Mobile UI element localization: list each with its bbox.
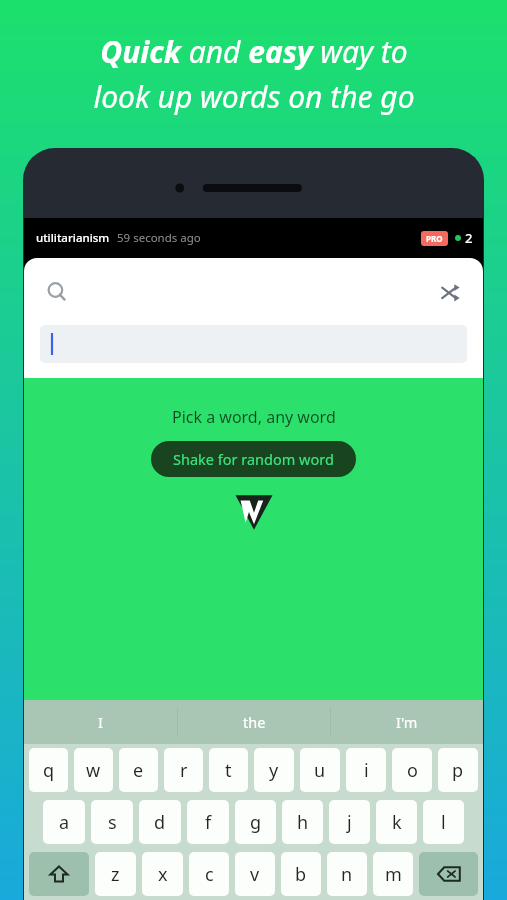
button[interactable]: j	[329, 800, 370, 844]
button[interactable]: r	[164, 748, 203, 792]
button[interactable]: Search	[40, 275, 74, 309]
staticText: the	[243, 712, 266, 732]
button[interactable]: I	[24, 700, 177, 744]
button[interactable]: k	[376, 800, 417, 844]
staticText: m	[385, 862, 402, 887]
staticText: r	[180, 758, 188, 783]
staticText: j	[347, 810, 352, 835]
button[interactable]: e	[119, 748, 158, 792]
staticText: c	[205, 862, 214, 887]
button[interactable]: b	[281, 852, 321, 896]
staticText: a	[59, 810, 70, 835]
staticText: e	[133, 758, 144, 783]
button[interactable]: u	[300, 748, 340, 792]
button[interactable]: o	[392, 748, 432, 792]
button[interactable]: n	[327, 852, 367, 896]
staticText: y	[269, 758, 279, 783]
button[interactable]: q	[29, 748, 68, 792]
button[interactable]: s	[91, 800, 133, 844]
staticText: I	[98, 712, 103, 732]
button[interactable]: Shake for random word	[151, 441, 356, 477]
staticText: f	[205, 810, 212, 835]
button[interactable]: h	[282, 800, 323, 844]
staticText: k	[392, 810, 402, 835]
staticText: q	[43, 758, 55, 783]
staticText: n	[341, 862, 353, 887]
staticText: g	[250, 810, 262, 835]
staticText: x	[158, 862, 168, 887]
staticText: d	[154, 810, 166, 835]
staticText: Pick a word, any word	[172, 406, 336, 428]
staticText: i	[364, 758, 369, 783]
staticText: I'm	[396, 712, 418, 732]
staticText: l	[441, 810, 446, 835]
staticText: w	[86, 758, 101, 783]
button[interactable]: Shift	[29, 852, 89, 896]
staticText: 59 seconds ago	[117, 230, 201, 246]
button[interactable]: i	[346, 748, 386, 792]
button[interactable]: I'm	[331, 700, 483, 744]
button[interactable]: w	[74, 748, 113, 792]
button[interactable]: v	[235, 852, 275, 896]
button[interactable]: t	[209, 748, 248, 792]
staticText: t	[225, 758, 232, 783]
button[interactable]: PRO	[426, 233, 443, 244]
button[interactable]	[40, 325, 467, 363]
button[interactable]: c	[189, 852, 229, 896]
staticText: v	[250, 862, 260, 887]
staticText: h	[297, 810, 309, 835]
staticText: o	[407, 758, 418, 783]
button[interactable]: Backspace	[419, 852, 478, 896]
button[interactable]: x	[142, 852, 183, 896]
button[interactable]: Random word	[433, 275, 467, 309]
staticText: z	[111, 862, 120, 887]
button[interactable]: p	[438, 748, 478, 792]
staticText: Quick and easy way to look up words on t…	[93, 31, 415, 117]
button[interactable]: l	[423, 800, 464, 844]
staticText: s	[108, 810, 117, 835]
button[interactable]: a	[43, 800, 85, 844]
staticText: utilitarianism	[36, 230, 110, 246]
staticText: Shake for random word	[173, 449, 334, 469]
staticText: 2	[465, 229, 473, 247]
staticText: u	[314, 758, 326, 783]
button[interactable]: f	[187, 800, 229, 844]
button[interactable]: y	[254, 748, 294, 792]
staticText: PRO	[426, 233, 443, 244]
staticText: b	[295, 862, 307, 887]
button[interactable]: d	[139, 800, 181, 844]
button[interactable]: the	[178, 700, 330, 744]
button[interactable]: z	[95, 852, 136, 896]
button[interactable]: m	[373, 852, 413, 896]
staticText: p	[452, 758, 464, 783]
button[interactable]: g	[235, 800, 276, 844]
